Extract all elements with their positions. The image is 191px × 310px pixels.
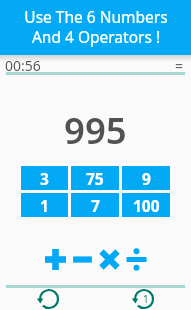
button[interactable]: 3 [21,166,68,190]
button[interactable]: Divide [123,246,150,273]
staticText: 00:56 [5,56,41,75]
staticText: 1 [40,195,49,216]
staticText: 995 [64,105,127,149]
button[interactable]: Plus [42,246,69,273]
button[interactable]: 100 [122,193,170,217]
button[interactable]: Undo [132,288,156,310]
staticText: Use The 6 Numbers And 4 Operators ! [24,6,168,48]
button[interactable]: 1 [21,193,68,217]
button[interactable]: 9 [122,166,170,190]
staticText: 75 [86,168,104,189]
button[interactable]: Minus [69,246,96,273]
button[interactable]: 7 [71,193,119,217]
staticText: 3 [40,168,49,189]
staticText: 9 [142,168,151,189]
button[interactable]: Restart [37,288,61,310]
button[interactable]: 75 [71,166,119,190]
staticText: 1 [143,292,149,306]
staticText: 100 [133,195,160,216]
staticText: = [175,56,184,75]
staticText: 7 [91,195,100,216]
button[interactable]: Multiply [96,246,123,273]
